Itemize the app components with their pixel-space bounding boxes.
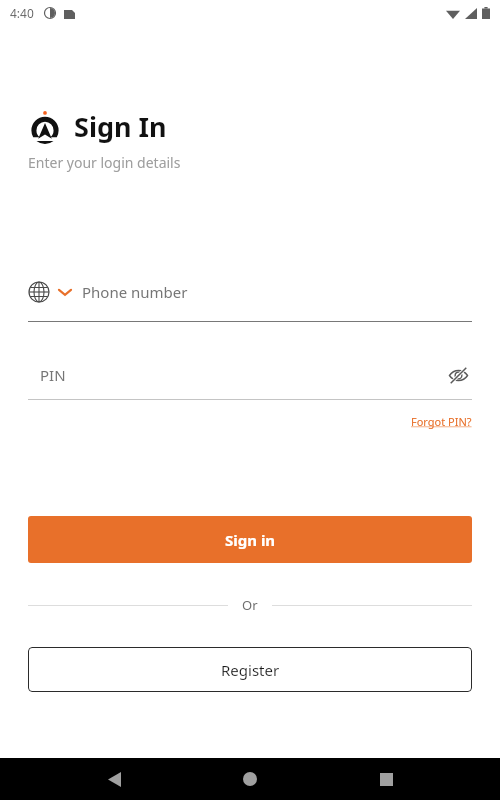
button[interactable]: Toggle PIN visibility [444,361,472,389]
other: Select country [28,281,50,303]
staticText: 4:40 [10,5,34,21]
staticText: Sign In [74,108,167,145]
staticText: Or [242,596,258,614]
staticText: Sign in [225,530,276,550]
staticText: Forgot PIN? [411,414,472,429]
staticText: Enter your login details [28,153,181,172]
button[interactable]: Forgot PIN? [411,414,472,429]
button[interactable]: Home [228,758,272,800]
staticText: PIN [40,365,444,385]
button[interactable]: Back [92,758,136,800]
staticText: Register [221,660,280,680]
button[interactable]: Recent apps [364,758,408,800]
button[interactable]: Register [28,647,472,692]
staticText: Phone number [82,282,188,302]
button[interactable]: Sign in [28,516,472,563]
button[interactable]: Select country [28,275,472,309]
